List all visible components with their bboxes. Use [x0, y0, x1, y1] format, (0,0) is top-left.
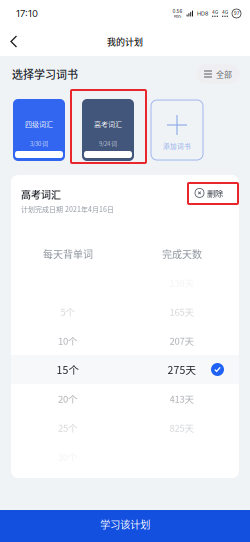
- button[interactable]: 全部: [196, 64, 240, 84]
- staticText: 高考词汇: [21, 187, 61, 201]
- button[interactable]: 四级词汇: [13, 99, 65, 161]
- button[interactable]: 10个: [11, 326, 239, 355]
- staticText: 413天: [169, 392, 194, 405]
- staticText: 完成天数: [162, 247, 202, 261]
- staticText: 每天背单词: [43, 247, 93, 261]
- button[interactable]: 15个: [11, 355, 239, 384]
- staticText: 207天: [169, 334, 194, 347]
- button[interactable]: 学习该计划: [0, 510, 250, 542]
- button[interactable]: 20个: [11, 384, 239, 413]
- staticText: 20个: [58, 392, 78, 405]
- staticText: 选择学习词书: [12, 66, 78, 82]
- button[interactable]: 5个: [11, 297, 239, 326]
- staticText: 15个: [56, 362, 79, 377]
- staticText: 我的计划: [107, 35, 143, 48]
- button[interactable]: 删除: [192, 184, 226, 202]
- staticText: 全部: [216, 68, 232, 80]
- staticText: 9/24 词: [99, 139, 117, 148]
- staticText: 165天: [169, 305, 194, 318]
- staticText: 高考词汇: [94, 119, 122, 129]
- button[interactable]: 返回: [0, 27, 29, 55]
- staticText: 275天: [167, 362, 196, 377]
- staticText: 17:10: [16, 8, 38, 19]
- staticText: HD8: [197, 10, 208, 17]
- button[interactable]: 25个: [11, 413, 239, 442]
- staticText: 5个: [60, 305, 75, 318]
- staticText: 10个: [58, 334, 78, 347]
- button[interactable]: 高考词汇: [82, 99, 134, 161]
- staticText: 添加词书: [163, 141, 191, 151]
- staticText: 计划完成日期 2021年4月16日: [21, 204, 114, 214]
- staticText: 四级词汇: [25, 119, 53, 129]
- staticText: 4G: [222, 10, 228, 15]
- staticText: 25个: [58, 421, 78, 434]
- staticText: 3/30 词: [30, 139, 48, 148]
- staticText: 138天: [169, 276, 194, 289]
- staticText: 0.56: [173, 8, 183, 14]
- staticText: 825天: [169, 421, 194, 434]
- button[interactable]: 添加词书: [151, 99, 203, 161]
- staticText: KB/S: [174, 14, 181, 18]
- staticText: 学习该计划: [100, 516, 150, 532]
- staticText: 4G: [212, 10, 218, 15]
- staticText: 删除: [207, 187, 223, 199]
- staticText: 97: [234, 11, 239, 16]
